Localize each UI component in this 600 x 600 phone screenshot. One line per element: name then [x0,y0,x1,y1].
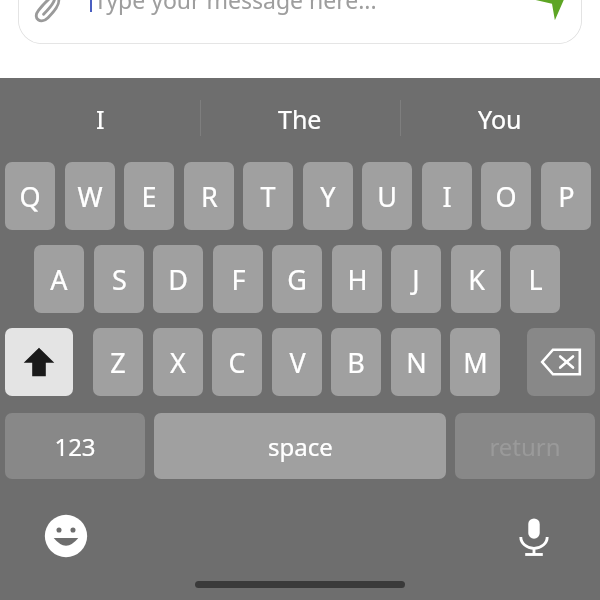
staticText: U [377,178,397,215]
button[interactable]: Shift [5,328,73,396]
staticText: The [278,102,322,136]
staticText: L [528,261,543,298]
button[interactable]: 123 [5,413,145,479]
staticText: W [77,178,103,215]
staticText: I [442,178,452,215]
staticText: O [495,178,517,215]
button[interactable]: I [422,162,472,230]
button[interactable]: P [541,162,591,230]
button[interactable]: L [510,245,560,313]
button[interactable]: O [481,162,531,230]
staticText: E [141,178,157,215]
staticText: G [287,261,307,298]
staticText: X [170,344,186,381]
staticText: You [478,102,522,136]
button[interactable]: The [200,78,400,160]
staticText: V [289,344,306,381]
button[interactable]: U [362,162,412,230]
button[interactable]: A [34,245,84,313]
button[interactable]: B [331,328,381,396]
button[interactable]: Send [528,0,576,24]
staticText: C [228,344,246,381]
button[interactable]: M [450,328,500,396]
button[interactable]: W [65,162,115,230]
button[interactable]: Q [5,162,55,230]
button[interactable]: C [212,328,262,396]
staticText: P [558,178,575,215]
staticText: Q [19,178,41,215]
staticText: Y [320,178,336,215]
button[interactable]: Z [93,328,143,396]
staticText: B [347,344,365,381]
staticText: H [347,261,368,298]
staticText: T [260,178,276,215]
button[interactable]: X [153,328,203,396]
button[interactable]: N [391,328,441,396]
button[interactable]: F [213,245,263,313]
button[interactable]: Attach [26,0,70,30]
button[interactable]: R [184,162,234,230]
staticText: return [489,430,561,463]
button[interactable]: Backspace [527,328,595,396]
staticText: space [268,430,333,463]
button[interactable]: D [153,245,203,313]
button[interactable]: G [272,245,322,313]
button[interactable]: Voice input [508,510,560,562]
button[interactable]: V [272,328,322,396]
staticText: I [96,102,105,136]
staticText: R [201,178,218,215]
staticText: D [168,261,188,298]
button[interactable]: T [243,162,293,230]
button[interactable]: H [332,245,382,313]
staticText: A [50,261,68,298]
staticText: M [463,344,488,381]
button[interactable]: You [400,78,600,160]
button[interactable]: space [154,413,446,479]
button[interactable]: K [451,245,501,313]
staticText: J [412,261,420,298]
button[interactable]: Emoji [40,510,92,562]
button[interactable]: S [94,245,144,313]
staticText: Type your message here... [94,0,377,15]
button[interactable]: J [391,245,441,313]
staticText: F [231,261,246,298]
button[interactable]: return [455,413,595,479]
button[interactable]: Y [303,162,353,230]
button[interactable]: E [124,162,174,230]
staticText: 123 [54,430,96,463]
staticText: K [468,261,485,298]
button[interactable]: I [0,78,200,160]
staticText: N [406,344,427,381]
button[interactable] [18,0,582,44]
staticText: S [112,261,127,298]
staticText: Z [110,344,126,381]
